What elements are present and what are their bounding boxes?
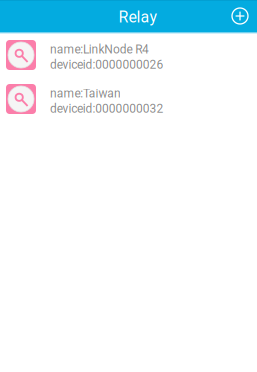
staticText: Relay	[118, 8, 157, 26]
staticText: deviceid:0000000026	[50, 57, 163, 72]
button[interactable]: name:LinkNode R4	[0, 33, 257, 77]
button[interactable]: name:Taiwan	[0, 77, 257, 121]
staticText: name:LinkNode R4	[50, 42, 149, 56]
button[interactable]: Add relay	[232, 8, 257, 24]
staticText: name:Taiwan	[50, 86, 121, 100]
staticText: deviceid:0000000032	[50, 101, 163, 116]
